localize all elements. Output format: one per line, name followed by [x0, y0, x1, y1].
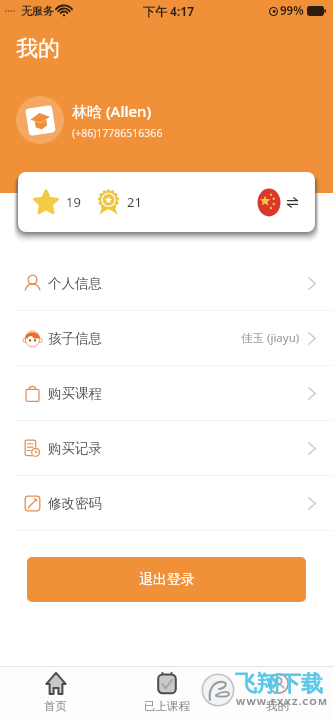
staticText: 购买记录 — [48, 440, 102, 457]
staticText: 99% — [280, 3, 304, 19]
button[interactable]: 购买课程 — [0, 366, 333, 421]
staticText: 21 — [127, 193, 142, 211]
staticText: 孩子信息 — [48, 330, 102, 347]
staticText: WWW.FXXZ.COM — [236, 695, 329, 708]
button[interactable]: 个人信息 — [0, 256, 333, 311]
staticText: 下午 4:17 — [143, 3, 195, 19]
staticText: 购买课程 — [48, 385, 102, 402]
button[interactable]: 我的 — [222, 667, 333, 720]
staticText: 飞翔下载 — [235, 670, 323, 698]
staticText: 个人信息 — [48, 275, 102, 292]
button[interactable]: 首页 — [0, 667, 111, 720]
staticText: 无服务 — [21, 4, 54, 18]
button[interactable]: 退出登录 — [27, 557, 306, 602]
button[interactable]: Switch language — [255, 188, 298, 217]
staticText: 首页 — [44, 699, 67, 713]
staticText: 我的 — [266, 699, 289, 713]
staticText: 我的 — [16, 35, 60, 63]
button[interactable]: 已上课程 — [111, 667, 222, 720]
button[interactable]: 孩子信息 — [0, 311, 333, 366]
button[interactable]: 修改密码 — [0, 476, 333, 531]
button[interactable]: 购买记录 — [0, 421, 333, 476]
staticText: 修改密码 — [48, 495, 102, 512]
staticText: 佳玉 (jiayu) — [241, 330, 300, 346]
staticText: (+86)17786516366 — [72, 126, 163, 140]
staticText: 林晗 (Allen) — [72, 101, 152, 121]
staticText: 19 — [66, 193, 81, 211]
staticText: 退出登录 — [139, 571, 195, 589]
staticText: 已上课程 — [144, 699, 190, 713]
